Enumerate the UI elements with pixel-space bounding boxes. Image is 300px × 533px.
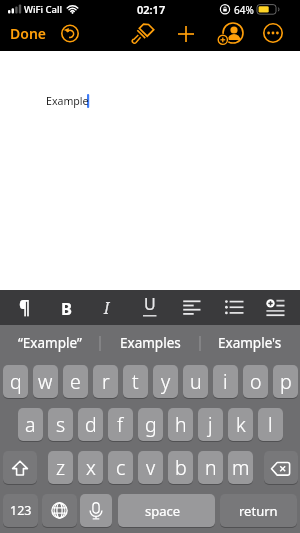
staticText: Done [10, 24, 47, 43]
staticText: m [232, 454, 250, 481]
button[interactable]: space [118, 494, 215, 527]
button[interactable]: v [138, 451, 163, 484]
button[interactable] [218, 21, 248, 47]
staticText: f [117, 411, 124, 438]
staticText: space [145, 502, 181, 520]
staticText: WiFi Call [24, 3, 63, 16]
button[interactable]: o [243, 365, 268, 398]
button[interactable]: e [63, 365, 88, 398]
button[interactable]: p [273, 365, 298, 398]
button[interactable]: Done [10, 24, 47, 43]
staticText: e [70, 368, 81, 395]
staticText: “Example” [18, 334, 82, 352]
button[interactable] [80, 494, 112, 527]
staticText: q [10, 368, 22, 395]
staticText: x [86, 454, 96, 481]
staticText: y [161, 368, 171, 395]
staticText: w [38, 368, 53, 395]
button[interactable] [264, 294, 292, 321]
button[interactable] [174, 21, 198, 47]
staticText: b [175, 454, 187, 481]
button[interactable]: a [18, 408, 43, 441]
staticText: 02:17 [137, 2, 166, 17]
button[interactable]: q [3, 365, 28, 398]
button[interactable] [180, 294, 208, 321]
button[interactable] [264, 451, 298, 484]
button[interactable]: x [78, 451, 103, 484]
button[interactable]: n [198, 451, 223, 484]
button[interactable] [130, 21, 154, 47]
button[interactable]: b [168, 451, 193, 484]
staticText: U [144, 293, 156, 315]
staticText: Example [46, 94, 89, 108]
button[interactable]: l [258, 408, 283, 441]
staticText: a [25, 411, 36, 438]
button[interactable]: r [93, 365, 118, 398]
button[interactable]: t [123, 365, 148, 398]
staticText: I [104, 297, 110, 319]
button[interactable]: return [220, 494, 297, 527]
staticText: ¶ [19, 296, 31, 319]
button[interactable]: h [168, 408, 193, 441]
button[interactable]: k [228, 408, 253, 441]
staticText: s [56, 411, 66, 438]
staticText: j [208, 411, 213, 438]
staticText: t [132, 368, 139, 395]
button[interactable]: B [55, 294, 77, 321]
staticText: v [146, 454, 156, 481]
staticText: return [239, 502, 278, 520]
button[interactable]: f [108, 408, 133, 441]
button[interactable]: U [139, 292, 161, 316]
staticText: u [190, 368, 202, 395]
staticText: h [175, 411, 187, 438]
button[interactable] [42, 494, 77, 527]
button[interactable] [261, 21, 285, 47]
staticText: z [56, 454, 66, 481]
button[interactable]: w [33, 365, 58, 398]
staticText: l [268, 411, 273, 438]
staticText: r [102, 368, 110, 395]
staticText: Examples [120, 334, 181, 352]
button[interactable]: y [153, 365, 178, 398]
staticText: c [116, 454, 126, 481]
button[interactable]: m [228, 451, 253, 484]
staticText: g [145, 411, 157, 438]
button[interactable]: c [108, 451, 133, 484]
button[interactable]: 123 [3, 494, 38, 527]
staticText: d [85, 411, 97, 438]
staticText: i [223, 368, 228, 395]
staticText: 64% [234, 3, 254, 17]
staticText: p [280, 368, 292, 395]
staticText: Example's [218, 334, 282, 352]
staticText: o [250, 368, 262, 395]
button[interactable]: I [96, 294, 118, 321]
button[interactable]: Example's [200, 326, 300, 360]
button[interactable] [3, 451, 37, 484]
button[interactable]: d [78, 408, 103, 441]
staticText: n [205, 454, 217, 481]
button[interactable]: g [138, 408, 163, 441]
button[interactable]: i [213, 365, 238, 398]
button[interactable] [224, 294, 252, 321]
button[interactable]: ¶ [14, 294, 36, 321]
staticText: 123 [10, 502, 32, 519]
button[interactable]: s [48, 408, 73, 441]
button[interactable]: z [48, 451, 73, 484]
button[interactable]: u [183, 365, 208, 398]
button[interactable] [58, 21, 82, 46]
button[interactable]: “Example” [0, 326, 100, 360]
button[interactable]: j [198, 408, 223, 441]
staticText: B [61, 297, 72, 319]
button[interactable]: Examples [100, 326, 200, 360]
staticText: k [236, 411, 246, 438]
